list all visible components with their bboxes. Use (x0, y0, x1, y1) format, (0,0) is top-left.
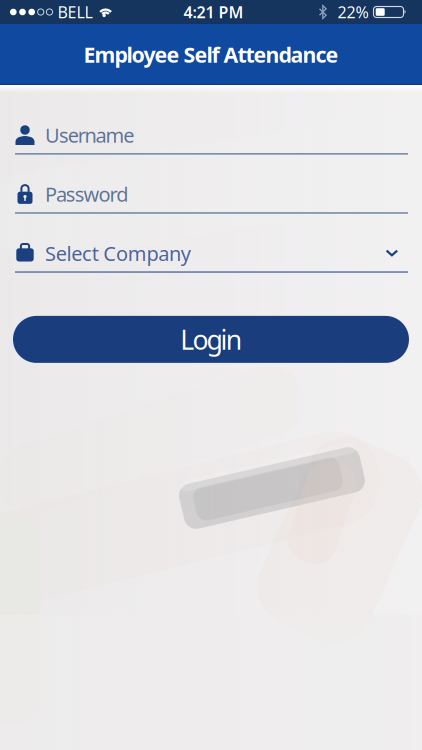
staticText: Employee Self Attendance (83, 40, 338, 69)
button[interactable]: Select Company (0, 235, 422, 273)
staticText: Username (45, 122, 134, 148)
button[interactable]: Password (0, 176, 422, 214)
staticText: BELL (58, 1, 93, 23)
staticText: Select Company (45, 240, 191, 266)
staticText: 4:21 PM (183, 1, 243, 23)
button[interactable]: Login (0, 316, 422, 363)
staticText: Login (180, 322, 242, 357)
button[interactable]: Username (0, 117, 422, 155)
staticText: Password (45, 181, 128, 207)
staticText: 22% (337, 1, 368, 23)
